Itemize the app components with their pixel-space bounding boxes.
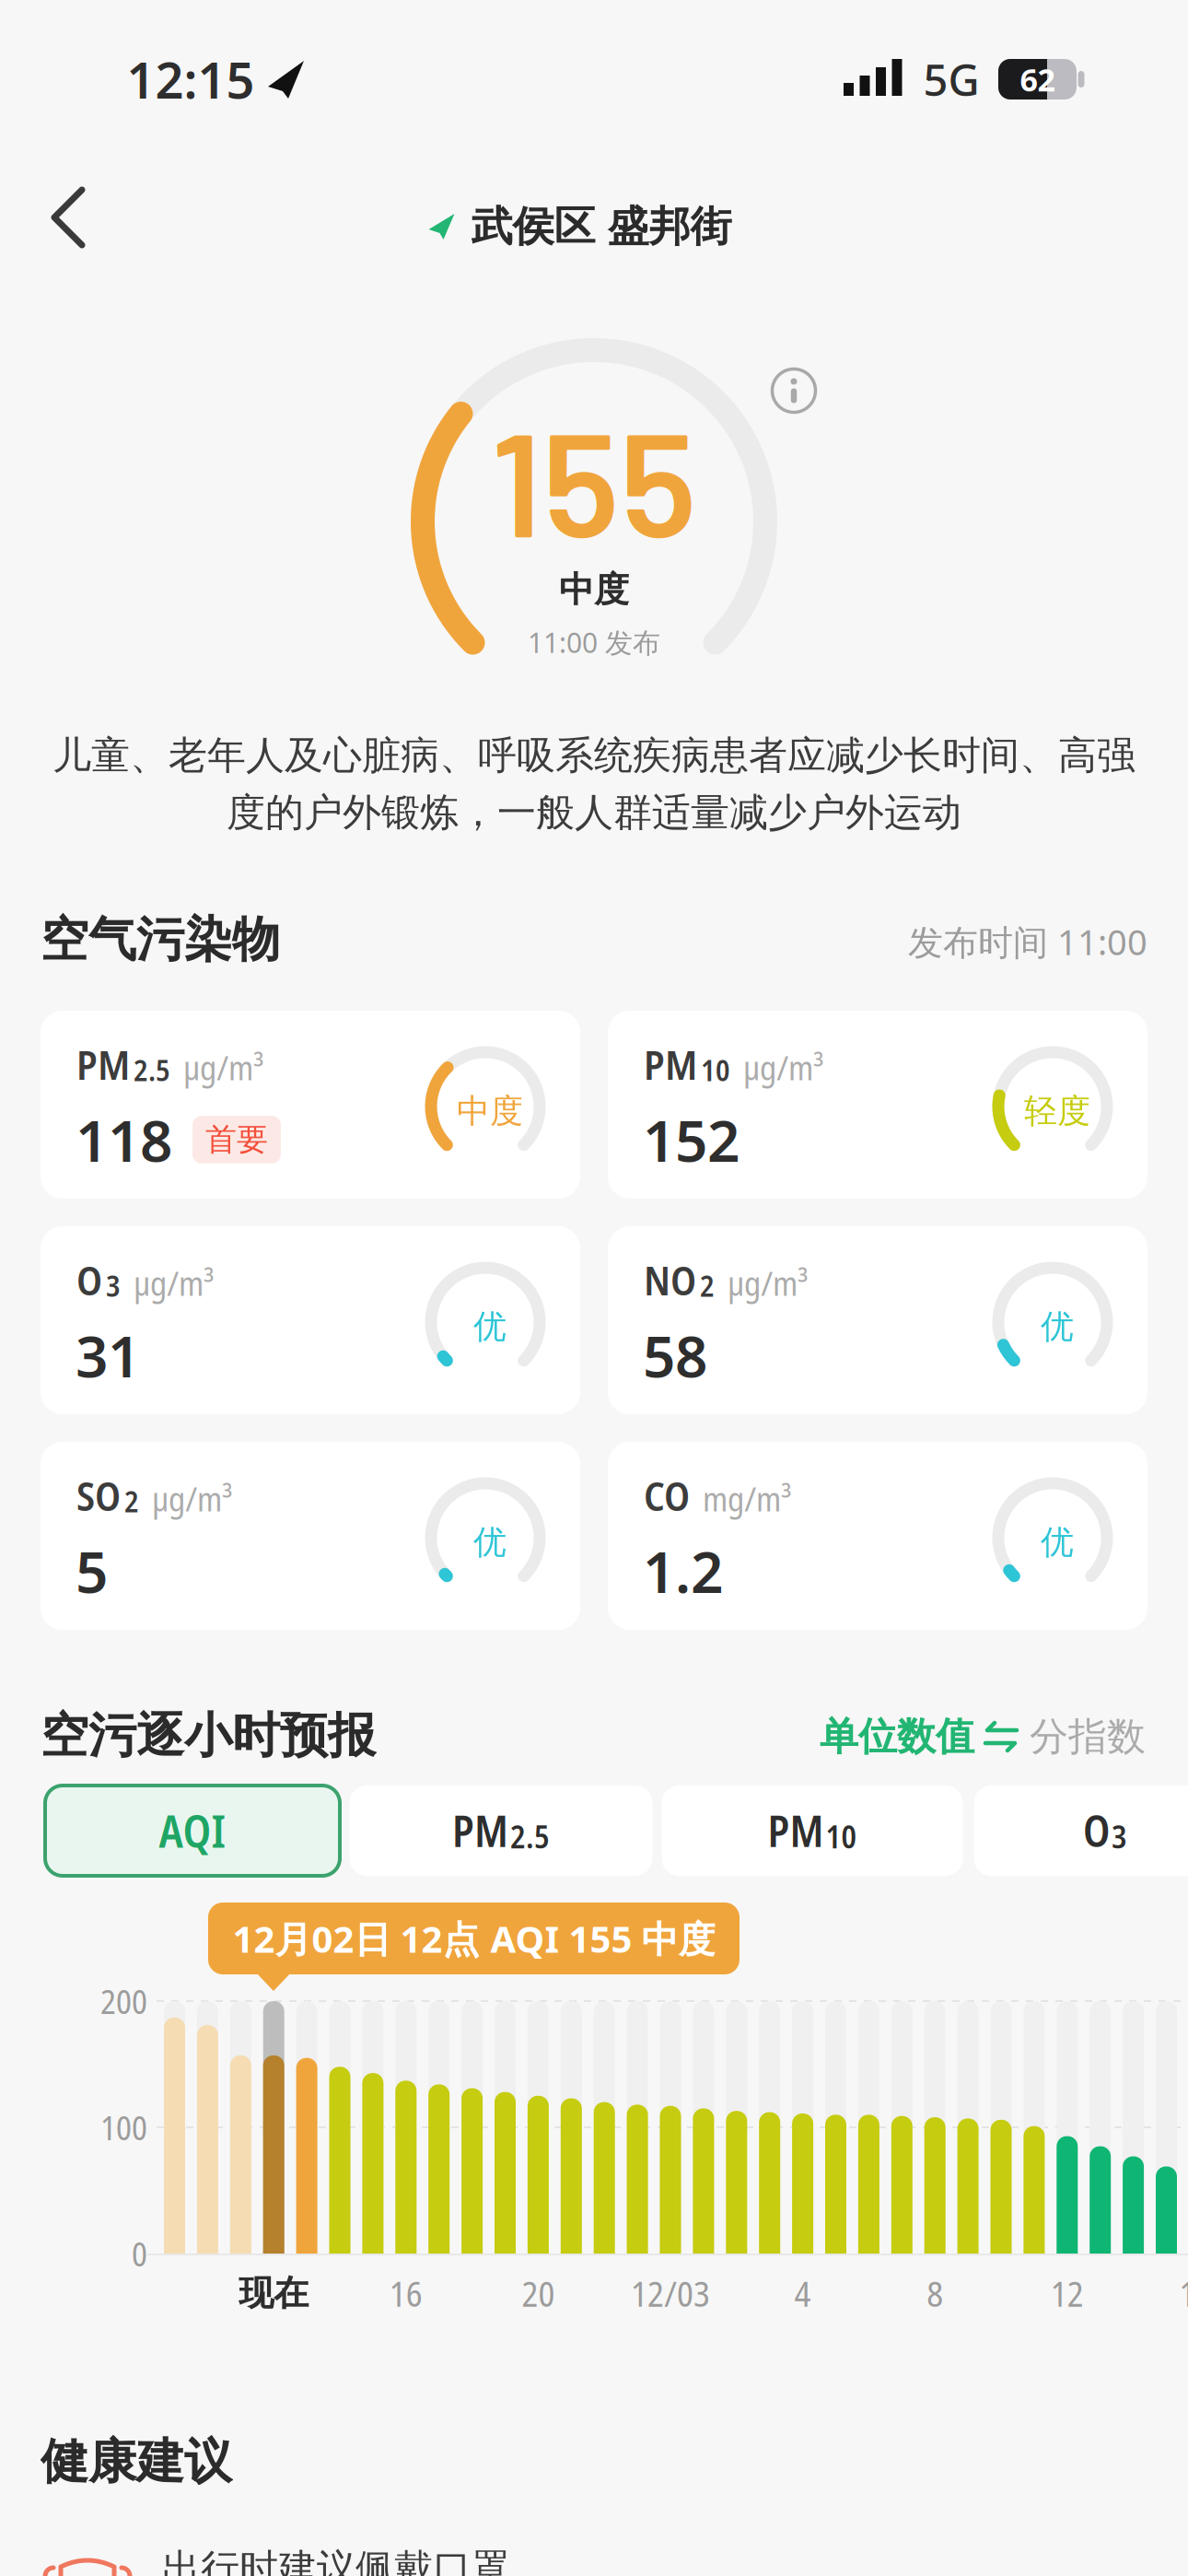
staticText: 优 xyxy=(473,1306,507,1347)
staticText: PM xyxy=(452,1802,508,1860)
staticText: 3 xyxy=(106,1265,121,1306)
staticText: 优 xyxy=(1041,1522,1074,1563)
staticText: 度的户外锻炼，一般人群适量减少户外运动 xyxy=(227,789,961,836)
staticText: 11:00 发布 xyxy=(528,624,660,660)
button[interactable]: AQI xyxy=(45,1786,340,1876)
staticText: 4 xyxy=(794,2269,811,2317)
staticText: 5G xyxy=(923,50,979,108)
staticText: 2 xyxy=(124,1481,139,1521)
staticText: 12 xyxy=(1051,2269,1084,2317)
staticText: 1.2 xyxy=(643,1533,723,1609)
staticText: 155 xyxy=(491,392,697,566)
staticText: AQI xyxy=(159,1801,226,1861)
staticText: µg/m³ xyxy=(134,1260,215,1305)
staticText: 118 xyxy=(76,1102,172,1178)
staticText: 16 xyxy=(389,2269,423,2317)
button[interactable]: PM xyxy=(349,1786,652,1876)
staticText: 出行时建议佩戴口罩 xyxy=(162,2545,510,2576)
staticText: 2 xyxy=(700,1265,715,1306)
staticText: 8 xyxy=(927,2269,943,2317)
staticText: 儿童、老年人及心脏病、呼吸系统疾病患者应减少长时间、高强 xyxy=(52,732,1136,779)
staticText: 优 xyxy=(1041,1306,1074,1347)
staticText: 12:15 xyxy=(127,46,255,112)
button[interactable]: Info xyxy=(772,369,815,412)
staticText: 100 xyxy=(100,2105,147,2150)
staticText: 单位数值 xyxy=(820,1713,974,1760)
staticText: µg/m³ xyxy=(743,1045,824,1090)
staticText: 发布时间 11:00 xyxy=(908,918,1147,965)
staticText: 轻度 xyxy=(1024,1091,1090,1131)
button[interactable]: O xyxy=(974,1786,1188,1876)
staticText: 10 xyxy=(701,1050,730,1090)
staticText: 5 xyxy=(76,1533,108,1609)
staticText: 优 xyxy=(473,1522,507,1563)
staticText: CO xyxy=(644,1468,690,1523)
staticText: 31 xyxy=(76,1317,140,1393)
staticText: PM xyxy=(768,1802,824,1860)
staticText: 空气污染物 xyxy=(41,910,280,969)
staticText: 2.5 xyxy=(134,1050,170,1090)
staticText: PM xyxy=(644,1036,697,1092)
staticText: O xyxy=(76,1252,102,1307)
staticText: 16 xyxy=(1179,2269,1188,2317)
staticText: 20 xyxy=(522,2269,555,2317)
staticText: 2.5 xyxy=(510,1815,550,1858)
staticText: 中度 xyxy=(457,1091,523,1131)
staticText: 空污逐小时预报 xyxy=(41,1706,376,1765)
staticText: 200 xyxy=(100,1979,147,2024)
staticText: PM xyxy=(76,1036,130,1092)
staticText: 152 xyxy=(643,1102,740,1178)
staticText: 现在 xyxy=(239,2272,309,2315)
staticText: 0 xyxy=(132,2231,147,2276)
staticText: SO xyxy=(76,1468,121,1523)
staticText: 58 xyxy=(643,1317,707,1393)
button[interactable]: 单位数值 xyxy=(820,1713,1146,1760)
staticText: 分指数 xyxy=(1030,1713,1146,1760)
staticText: 12月02日 12点 AQI 155 中度 xyxy=(233,1914,715,1963)
staticText: 中度 xyxy=(559,568,629,611)
staticText: 首要 xyxy=(205,1120,268,1159)
staticText: 3 xyxy=(1112,1815,1127,1858)
staticText: µg/m³ xyxy=(183,1045,264,1090)
staticText: µg/m³ xyxy=(728,1260,809,1305)
staticText: µg/m³ xyxy=(152,1476,233,1521)
staticText: NO xyxy=(644,1252,696,1307)
staticText: 12/03 xyxy=(631,2269,710,2317)
staticText: 10 xyxy=(826,1815,857,1858)
staticText: mg/m³ xyxy=(703,1476,792,1521)
staticText: 健康建议 xyxy=(41,2432,232,2491)
staticText: 62 xyxy=(1020,58,1055,100)
button[interactable]: Back xyxy=(51,188,86,247)
button[interactable]: PM xyxy=(662,1786,963,1876)
button[interactable]: 武侯区 盛邦街 xyxy=(429,201,732,252)
staticText: O xyxy=(1083,1802,1110,1860)
staticText: 武侯区 盛邦街 xyxy=(471,201,732,252)
